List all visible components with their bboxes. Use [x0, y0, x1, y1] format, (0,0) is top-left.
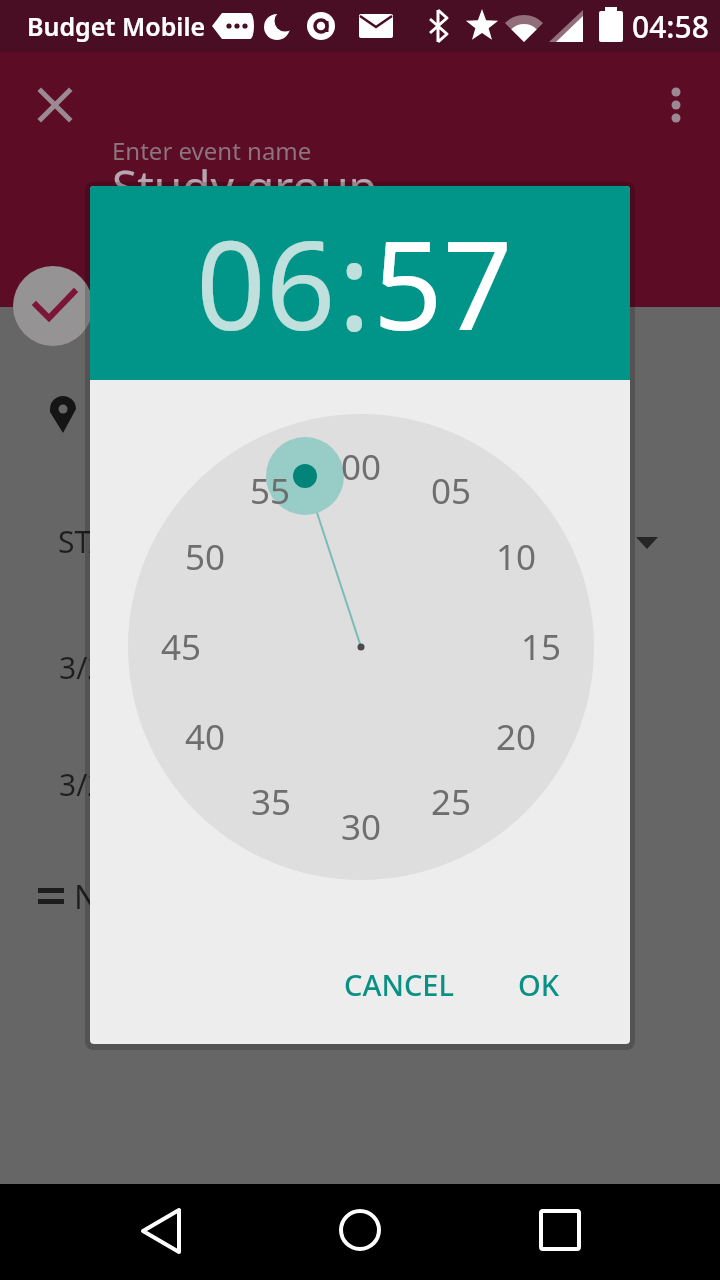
staticText: 06 [196, 200, 336, 366]
button[interactable] [13, 266, 93, 346]
staticText: 55 [250, 467, 291, 515]
staticText: 45 [161, 623, 202, 671]
staticText: 3/28/17 [59, 647, 168, 688]
staticText: 30 [341, 803, 382, 851]
staticText: 05 [431, 467, 472, 515]
staticText: No repetition [74, 875, 274, 919]
staticText: OK [518, 965, 560, 1004]
staticText: 57 [373, 200, 513, 366]
staticText: 50 [185, 533, 226, 581]
staticText: 10 [496, 533, 537, 581]
staticText: 3/28/17 [59, 764, 168, 805]
staticText: CANCEL [344, 965, 454, 1004]
button[interactable] [310, 1184, 410, 1280]
staticText: START [58, 521, 144, 562]
staticText: 15 [521, 623, 562, 671]
button[interactable] [510, 1184, 610, 1280]
button[interactable]: OK [489, 944, 589, 1024]
staticText: 35 [251, 778, 292, 826]
button[interactable]: CANCEL [319, 944, 479, 1024]
staticText: : [338, 200, 371, 366]
staticText: Study group [112, 155, 377, 218]
staticText: 04:58 [632, 6, 709, 47]
button[interactable] [111, 1184, 211, 1280]
staticText: 20 [496, 713, 537, 761]
staticText: 40 [185, 713, 226, 761]
staticText: Budget Mobile [27, 9, 206, 43]
staticText: 25 [431, 778, 472, 826]
staticText: Enter event name [112, 134, 312, 167]
staticText: 00 [341, 443, 382, 491]
